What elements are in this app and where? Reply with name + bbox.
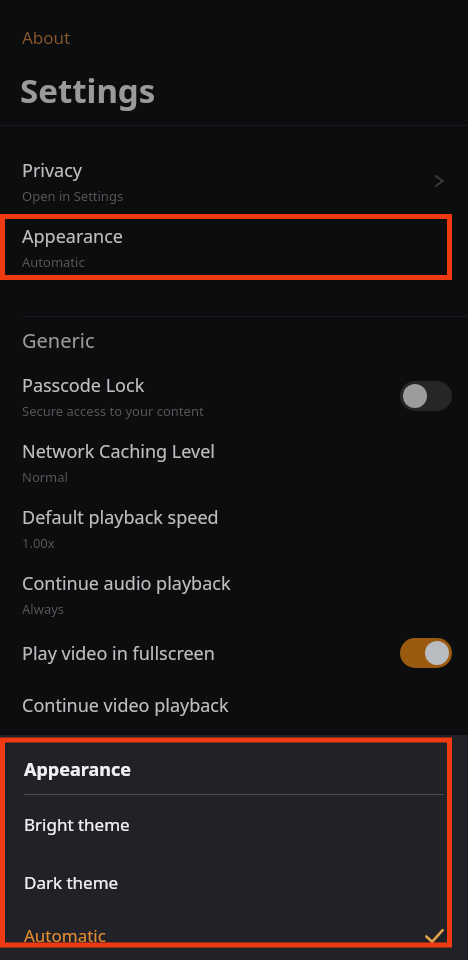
staticText: Dark theme <box>24 871 119 894</box>
button[interactable]: Passcode Lock <box>0 363 468 429</box>
button[interactable]: Appearance <box>0 214 468 280</box>
button[interactable]: Play video in fullscreen <box>0 627 468 679</box>
staticText: 1.00x <box>22 534 55 552</box>
staticText: Open in Settings <box>22 187 124 205</box>
button[interactable]: On <box>398 636 454 670</box>
button[interactable]: Off <box>398 379 454 413</box>
staticText: Normal <box>22 468 68 486</box>
staticText: Automatic <box>24 924 106 947</box>
staticText: About <box>22 26 71 49</box>
staticText: Appearance <box>24 757 131 782</box>
staticText: Generic <box>22 327 95 354</box>
staticText: Passcode Lock <box>22 373 145 398</box>
other: Open <box>424 166 454 196</box>
staticText: Secure access to your content <box>22 402 204 420</box>
button[interactable]: Network Caching Level <box>0 429 468 495</box>
staticText: Network Caching Level <box>22 439 216 464</box>
staticText: Settings <box>20 68 156 113</box>
staticText: Play video in fullscreen <box>22 641 215 666</box>
staticText: Privacy <box>22 158 83 183</box>
staticText: Default playback speed <box>22 505 219 530</box>
staticText: Bright theme <box>24 813 130 836</box>
staticText: Continue audio playback <box>22 571 231 596</box>
staticText: Always <box>22 600 65 618</box>
button[interactable]: Continue video playback <box>0 679 468 731</box>
button[interactable]: Default playback speed <box>0 495 468 561</box>
button[interactable]: Dark theme <box>0 853 468 911</box>
button[interactable]: About <box>22 26 71 49</box>
button[interactable]: Automatic <box>0 911 468 960</box>
staticText: Automatic <box>22 253 85 271</box>
button[interactable]: Privacy <box>0 148 468 214</box>
button[interactable]: Continue audio playback <box>0 561 468 627</box>
staticText: Continue video playback <box>22 693 229 718</box>
button[interactable]: Bright theme <box>0 795 468 853</box>
staticText: Appearance <box>22 224 123 249</box>
